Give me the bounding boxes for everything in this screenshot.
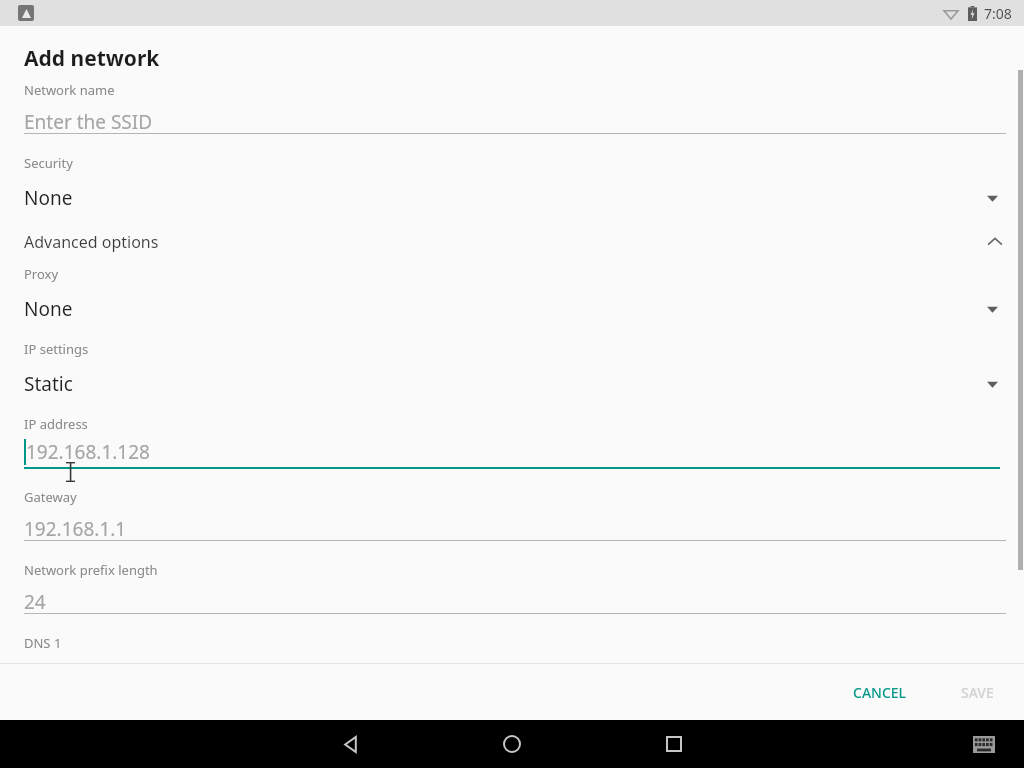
staticText: 192.168.1.1: [24, 516, 127, 542]
button[interactable]: Static: [0, 362, 1024, 406]
button[interactable]: Advanced options: [0, 220, 1024, 264]
staticText: SAVE: [961, 683, 994, 702]
button[interactable]: None: [0, 287, 1024, 331]
other: Open dropdown: [987, 304, 998, 315]
staticText: Advanced options: [24, 231, 159, 253]
button[interactable]: Home: [488, 720, 536, 768]
staticText: DNS 1: [24, 634, 62, 652]
other: Open dropdown: [987, 193, 998, 204]
other: Collapse advanced options: [986, 233, 1004, 251]
staticText: 192.168.1.128: [26, 439, 150, 465]
staticText: None: [24, 296, 73, 322]
staticText: IP settings: [24, 340, 89, 358]
staticText: Gateway: [24, 488, 77, 506]
staticText: Proxy: [24, 265, 59, 283]
button[interactable]: SAVE: [945, 673, 1010, 712]
button[interactable]: Change keyboard: [964, 724, 1004, 764]
staticText: Static: [24, 371, 73, 397]
staticText: Security: [24, 154, 73, 172]
staticText: CANCEL: [853, 683, 907, 702]
other: Open dropdown: [987, 379, 998, 390]
staticText: None: [24, 185, 73, 211]
button[interactable]: 192.168.1.128: [0, 436, 1024, 472]
staticText: Network prefix length: [24, 561, 158, 579]
staticText: IP address: [24, 415, 88, 433]
staticText: Add network: [24, 44, 160, 73]
staticText: 7:08: [984, 4, 1012, 23]
button[interactable]: None: [0, 176, 1024, 220]
button[interactable]: CANCEL: [837, 673, 923, 712]
button[interactable]: Back: [326, 720, 374, 768]
staticText: Enter the SSID: [24, 109, 153, 135]
staticText: 24: [24, 589, 46, 615]
staticText: Network name: [24, 81, 115, 99]
button[interactable]: Recent apps: [650, 720, 698, 768]
